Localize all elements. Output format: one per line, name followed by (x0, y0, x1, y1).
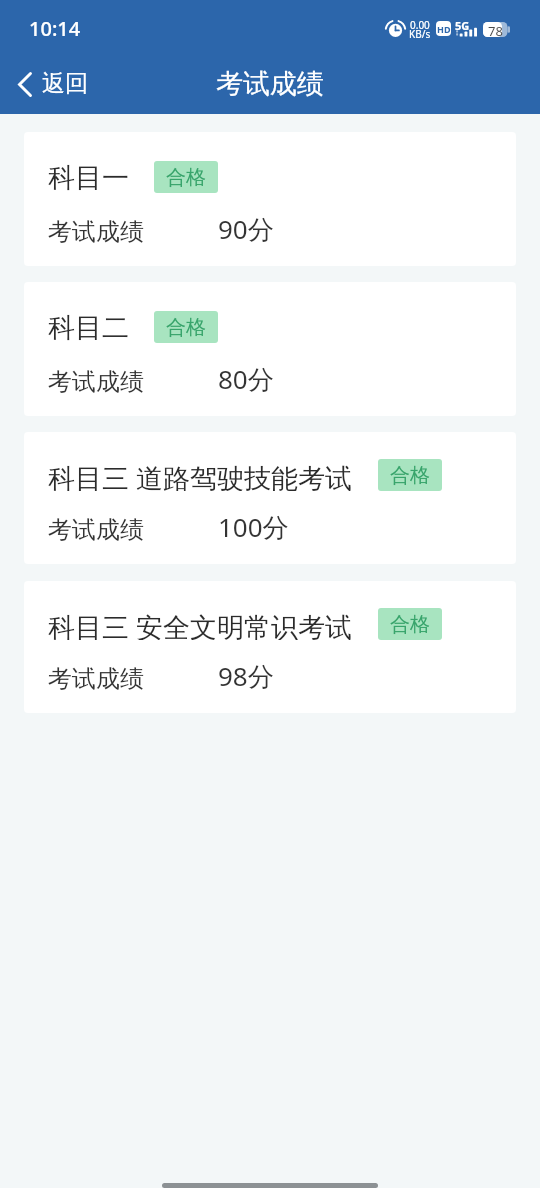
staticText: 科目三 道路驾驶技能考试 (48, 459, 353, 491)
button[interactable]: 科目一 (24, 132, 516, 266)
staticText: 合格 (166, 165, 206, 190)
staticText: 80分 (218, 361, 274, 397)
staticText: KB/s (409, 27, 431, 41)
button[interactable]: 科目三 安全文明常识考试 (24, 581, 516, 713)
staticText: 合格 (390, 612, 430, 637)
button[interactable]: 科目二 (24, 282, 516, 416)
staticText: 科目二 (48, 311, 129, 343)
staticText: 考试成绩 (48, 367, 144, 397)
staticText: 10:14 (29, 15, 81, 42)
staticText: 合格 (166, 315, 206, 340)
staticText: 98分 (218, 658, 274, 694)
button[interactable]: 科目三 道路驾驶技能考试 (24, 432, 516, 564)
staticText: 科目三 安全文明常识考试 (48, 608, 353, 640)
staticText: 合格 (390, 463, 430, 488)
staticText: 考试成绩 (48, 664, 144, 694)
staticText: 考试成绩 (48, 217, 144, 247)
staticText: 90分 (218, 211, 274, 247)
staticText: 考试成绩 (216, 67, 324, 101)
staticText: 100分 (218, 509, 289, 545)
staticText: 5G (455, 18, 470, 33)
button[interactable]: 返回 (0, 58, 102, 114)
staticText: 考试成绩 (48, 515, 144, 545)
staticText: HD (437, 23, 451, 35)
staticText: 科目一 (48, 161, 129, 193)
staticText: 0.00 (410, 18, 430, 32)
staticText: 78 (488, 22, 503, 36)
staticText: 返回 (42, 69, 88, 98)
